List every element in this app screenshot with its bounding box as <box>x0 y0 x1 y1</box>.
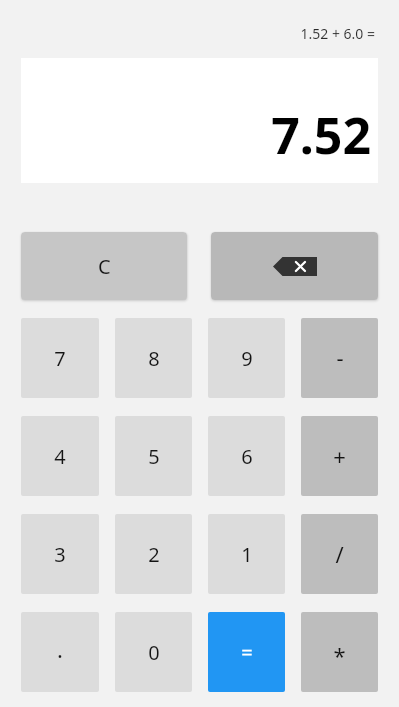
button[interactable]: 1 <box>208 514 285 594</box>
button[interactable]: * <box>301 612 378 692</box>
staticText: + <box>333 441 346 471</box>
button[interactable]: C <box>21 232 187 300</box>
staticText: = <box>241 639 253 666</box>
button[interactable]: Backspace <box>211 232 378 300</box>
button[interactable]: 7 <box>21 318 99 398</box>
staticText: 0 <box>148 639 160 666</box>
button[interactable]: - <box>301 318 378 398</box>
staticText: 7.52 <box>271 101 371 169</box>
staticText: 7 <box>54 345 66 372</box>
button[interactable]: = <box>208 612 285 692</box>
button[interactable]: 5 <box>115 416 192 496</box>
button[interactable]: . <box>21 612 99 692</box>
staticText: 5 <box>148 443 160 470</box>
staticText: 8 <box>148 345 160 372</box>
staticText: . <box>57 634 63 664</box>
button[interactable]: 2 <box>115 514 192 594</box>
staticText: - <box>336 342 344 372</box>
staticText: 3 <box>54 541 66 568</box>
staticText: 6 <box>241 443 253 470</box>
button[interactable]: / <box>301 514 378 594</box>
button[interactable]: 4 <box>21 416 99 496</box>
button[interactable]: 6 <box>208 416 285 496</box>
staticText: * <box>333 640 346 670</box>
button[interactable]: 3 <box>21 514 99 594</box>
staticText: / <box>335 539 344 569</box>
staticText: 4 <box>54 443 66 470</box>
button[interactable]: + <box>301 416 378 496</box>
button[interactable]: 0 <box>115 612 192 692</box>
button[interactable]: 8 <box>115 318 192 398</box>
staticText: C <box>98 253 111 280</box>
button[interactable]: 9 <box>208 318 285 398</box>
staticText: 1.52 + 6.0 = <box>300 24 375 43</box>
staticText: 9 <box>241 345 253 372</box>
staticText: 2 <box>148 541 160 568</box>
staticText: 1 <box>241 541 253 568</box>
